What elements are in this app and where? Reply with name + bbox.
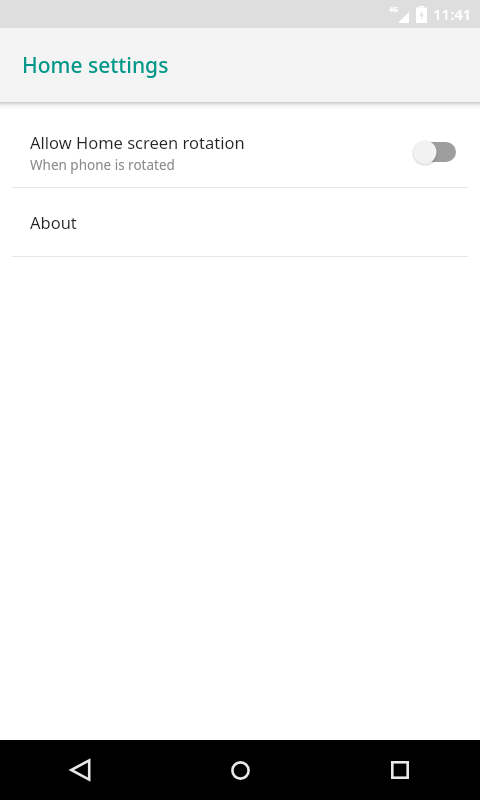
staticText: 11:41	[433, 4, 472, 24]
staticText: 4G	[389, 5, 399, 15]
button[interactable]: Back	[0, 740, 160, 800]
button[interactable]: About	[0, 188, 480, 256]
staticText: Allow Home screen rotation	[30, 131, 245, 153]
button[interactable]: Home	[160, 740, 320, 800]
staticText: About	[30, 211, 77, 233]
staticText: Home settings	[22, 51, 169, 80]
button[interactable]: Allow Home screen rotation toggle, off	[412, 139, 456, 165]
staticText: When phone is rotated	[30, 156, 175, 174]
button[interactable]: Recent apps	[320, 740, 480, 800]
button[interactable]: Allow Home screen rotation	[0, 117, 480, 187]
